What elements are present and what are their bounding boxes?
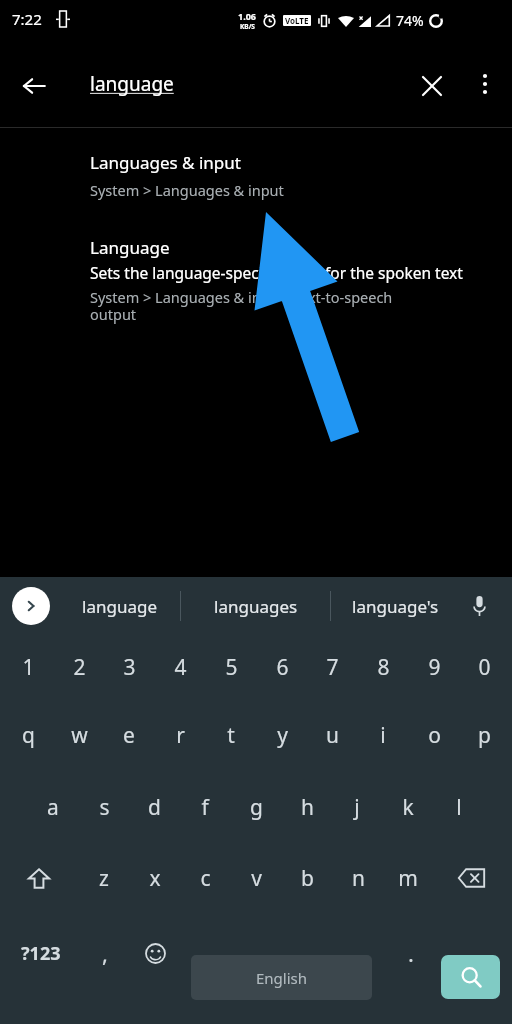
button[interactable]: b — [285, 843, 329, 913]
staticText: language — [82, 595, 157, 618]
staticText: 74% — [396, 11, 424, 30]
button[interactable]: , — [80, 922, 130, 984]
button[interactable]: Language — [0, 236, 512, 324]
staticText: System > Languages & input — [90, 180, 284, 200]
button[interactable]: z — [82, 843, 126, 913]
button[interactable]: 8 — [361, 635, 405, 699]
button[interactable]: k — [386, 771, 430, 843]
staticText: 5 — [225, 653, 238, 682]
staticText: 1.06 — [238, 10, 256, 22]
button[interactable]: w — [57, 699, 101, 771]
button[interactable]: language's — [333, 577, 457, 635]
staticText: English — [256, 968, 308, 988]
button[interactable]: 4 — [158, 635, 202, 699]
staticText: q — [22, 721, 35, 750]
staticText: Language — [90, 236, 170, 259]
button[interactable]: m — [386, 843, 430, 913]
button[interactable]: Clear search — [408, 62, 456, 110]
staticText: e — [123, 721, 135, 750]
staticText: System > Languages & inp > Text-to-speec… — [90, 287, 393, 324]
button[interactable]: Languages & input — [0, 151, 512, 200]
button[interactable]: language — [90, 58, 390, 110]
staticText: g — [250, 793, 263, 822]
button[interactable]: 3 — [107, 635, 151, 699]
button[interactable]: g — [234, 771, 278, 843]
button[interactable]: q — [6, 699, 50, 771]
button[interactable]: c — [183, 843, 227, 913]
staticText: x — [149, 864, 161, 893]
button[interactable]: 1 — [6, 635, 50, 699]
staticText: 7:22 — [12, 9, 42, 29]
staticText: 7 — [326, 653, 339, 682]
button[interactable]: ?123 — [8, 922, 74, 984]
button[interactable]: y — [260, 699, 304, 771]
staticText: KB/S — [240, 22, 255, 31]
staticText: j — [354, 793, 360, 822]
button[interactable]: Backspace — [444, 843, 498, 913]
staticText: z — [99, 864, 109, 893]
staticText: 9 — [428, 653, 441, 682]
button[interactable]: f — [183, 771, 227, 843]
staticText: o — [428, 721, 441, 750]
staticText: n — [352, 864, 365, 893]
button[interactable]: More options — [463, 62, 507, 106]
button[interactable]: v — [234, 843, 278, 913]
staticText: Sets the language-specific voice for the… — [90, 262, 463, 283]
button[interactable]: s — [82, 771, 126, 843]
button[interactable]: 7 — [310, 635, 354, 699]
button[interactable]: Emoji — [132, 922, 178, 984]
staticText: i — [380, 721, 386, 750]
staticText: w — [71, 721, 88, 750]
staticText: b — [301, 864, 314, 893]
staticText: language's — [352, 595, 439, 618]
staticText: Languages & input — [90, 151, 241, 174]
button[interactable]: Shift — [10, 843, 68, 913]
button[interactable]: e — [107, 699, 151, 771]
staticText: f — [201, 793, 209, 822]
staticText: 0 — [478, 653, 491, 682]
staticText: ?123 — [21, 941, 61, 966]
button[interactable]: Search — [441, 955, 500, 999]
staticText: l — [456, 793, 462, 822]
button[interactable]: 0 — [462, 635, 506, 699]
staticText: h — [301, 793, 314, 822]
staticText: m — [398, 864, 418, 893]
button[interactable]: Back — [10, 62, 58, 110]
button[interactable]: i — [361, 699, 405, 771]
button[interactable]: h — [285, 771, 329, 843]
staticText: u — [326, 721, 339, 750]
staticText: a — [47, 793, 59, 822]
staticText: k — [402, 793, 414, 822]
button[interactable]: t — [209, 699, 253, 771]
staticText: 3 — [123, 653, 136, 682]
button[interactable]: n — [336, 843, 380, 913]
button[interactable]: j — [335, 771, 379, 843]
button[interactable]: . — [388, 922, 434, 984]
staticText: . — [408, 938, 414, 968]
button[interactable]: l — [437, 771, 481, 843]
button[interactable]: a — [31, 771, 75, 843]
staticText: languages — [214, 595, 298, 618]
button[interactable]: r — [158, 699, 202, 771]
staticText: s — [99, 793, 110, 822]
button[interactable]: 5 — [209, 635, 253, 699]
staticText: , — [102, 938, 108, 968]
staticText: p — [478, 721, 491, 750]
button[interactable]: x — [133, 843, 177, 913]
button[interactable]: u — [310, 699, 354, 771]
button[interactable]: Voice input — [462, 591, 496, 621]
button[interactable]: languages — [183, 577, 329, 635]
button[interactable]: d — [132, 771, 176, 843]
button[interactable]: language — [58, 577, 180, 635]
button[interactable]: 9 — [412, 635, 456, 699]
button[interactable]: English — [191, 955, 372, 1000]
staticText: 1 — [22, 653, 35, 682]
button[interactable]: 6 — [260, 635, 304, 699]
staticText: y — [277, 721, 288, 750]
button[interactable]: Expand suggestions — [12, 587, 50, 625]
button[interactable]: 2 — [57, 635, 101, 699]
button[interactable]: o — [412, 699, 456, 771]
staticText: r — [176, 721, 185, 750]
button[interactable]: p — [462, 699, 506, 771]
staticText: d — [148, 793, 161, 822]
